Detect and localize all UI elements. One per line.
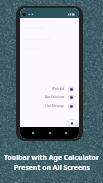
button[interactable]: Chat Message <box>20 103 74 109</box>
button[interactable]: Age Calculator <box>20 94 74 100</box>
staticText: Age Calculator <box>45 95 65 99</box>
staticText: Work Aid <box>52 87 65 91</box>
button[interactable]: Close menu <box>67 118 77 128</box>
staticText: Toolbar with Age Calculator <box>4 153 99 162</box>
staticText: Present on All Screens <box>14 163 90 172</box>
staticText: Chat Message <box>45 104 65 108</box>
button[interactable]: Work Aid <box>20 86 74 92</box>
